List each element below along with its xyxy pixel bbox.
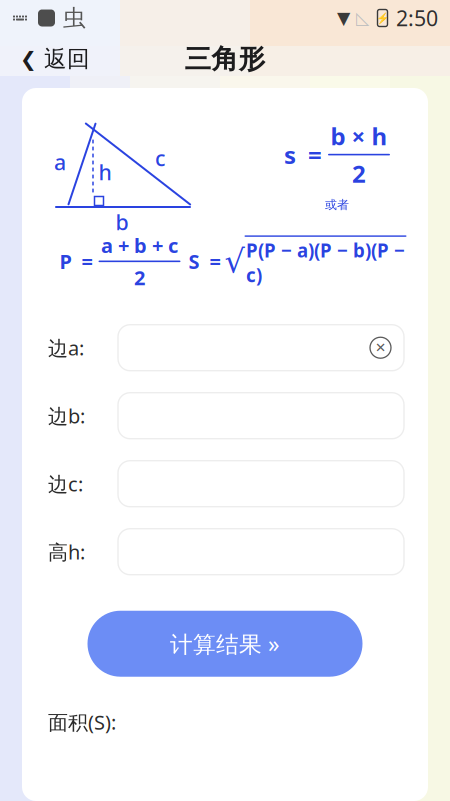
button[interactable]: ✕: [96, 325, 428, 371]
button[interactable]: ❮: [0, 37, 90, 81]
staticText: h: [98, 158, 111, 186]
button[interactable]: 计算结果 »: [87, 611, 362, 677]
staticText: ◺: [356, 8, 369, 28]
staticText: 或者: [325, 197, 349, 212]
staticText: 边c:: [48, 470, 83, 497]
staticText: 高h:: [48, 538, 85, 565]
staticText: P(P − a)(P − b)(P − c): [246, 238, 405, 287]
staticText: P =: [59, 248, 92, 275]
staticText: 面积(S):: [48, 709, 116, 735]
staticText: 三角形: [184, 43, 265, 75]
staticText: a: [54, 148, 66, 176]
staticText: √: [224, 243, 244, 279]
staticText: ✕: [375, 340, 386, 355]
staticText: 2:50: [396, 4, 438, 32]
staticText: ❮: [20, 48, 37, 70]
staticText: S =: [188, 248, 220, 275]
staticText: 边a:: [48, 334, 84, 361]
staticText: 虫: [63, 4, 86, 32]
staticText: ⚡: [376, 12, 389, 24]
staticText: 2: [134, 264, 145, 291]
staticText: b: [115, 208, 128, 236]
staticText: 返回: [44, 45, 90, 73]
staticText: c: [155, 144, 165, 172]
staticText: 2: [352, 157, 366, 189]
staticText: ▼: [337, 8, 350, 28]
staticText: 边b:: [48, 402, 85, 429]
staticText: s =: [284, 139, 322, 171]
staticText: 计算结果 »: [170, 629, 280, 659]
staticText: a + b + c: [101, 232, 178, 259]
staticText: b × h: [330, 120, 387, 152]
